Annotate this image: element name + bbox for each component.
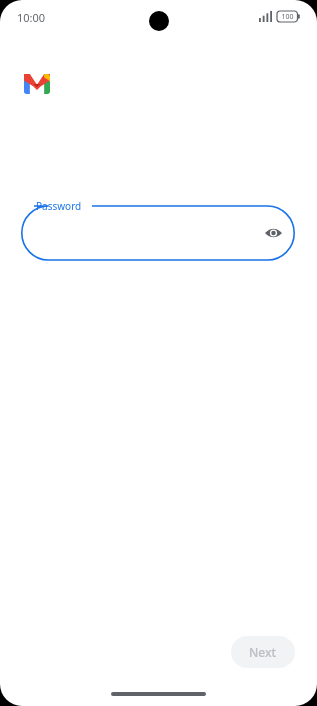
other: Gmail <box>24 74 50 94</box>
staticText: Password <box>36 199 82 213</box>
button[interactable]: Show password <box>256 216 290 250</box>
staticText: 10:00 <box>17 10 46 25</box>
staticText: 100 <box>281 12 294 22</box>
staticText: Next <box>249 644 277 660</box>
button[interactable]: Next <box>231 636 295 668</box>
button[interactable]: Password <box>21 198 295 260</box>
